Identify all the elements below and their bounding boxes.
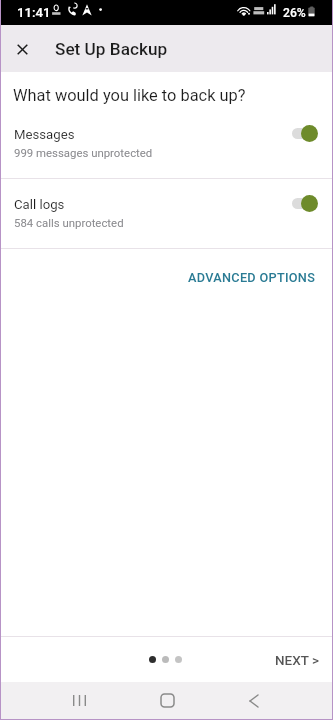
- button[interactable]: Toggle: [292, 195, 318, 212]
- button[interactable]: Recents: [59, 682, 99, 719]
- button[interactable]: Messages: [1, 109, 332, 178]
- button[interactable]: Back: [234, 682, 274, 719]
- staticText: Set Up Backup: [55, 39, 168, 59]
- button[interactable]: Toggle: [292, 125, 318, 142]
- button[interactable]: Close: [4, 31, 40, 67]
- staticText: Call logs: [14, 197, 65, 212]
- staticText: 26%: [283, 6, 306, 20]
- staticText: 11:41: [17, 5, 51, 20]
- staticText: ADVANCED OPTIONS: [188, 270, 316, 285]
- staticText: NEXT >: [275, 652, 319, 668]
- button[interactable]: Call logs: [1, 179, 332, 248]
- staticText: What would you like to back up?: [13, 86, 246, 105]
- staticText: Messages: [14, 127, 75, 142]
- staticText: 999 messages unprotected: [14, 146, 153, 159]
- button[interactable]: NEXT >: [275, 637, 332, 682]
- button[interactable]: ADVANCED OPTIONS: [1, 249, 332, 304]
- button[interactable]: Home: [147, 682, 187, 719]
- staticText: 584 calls unprotected: [14, 216, 124, 229]
